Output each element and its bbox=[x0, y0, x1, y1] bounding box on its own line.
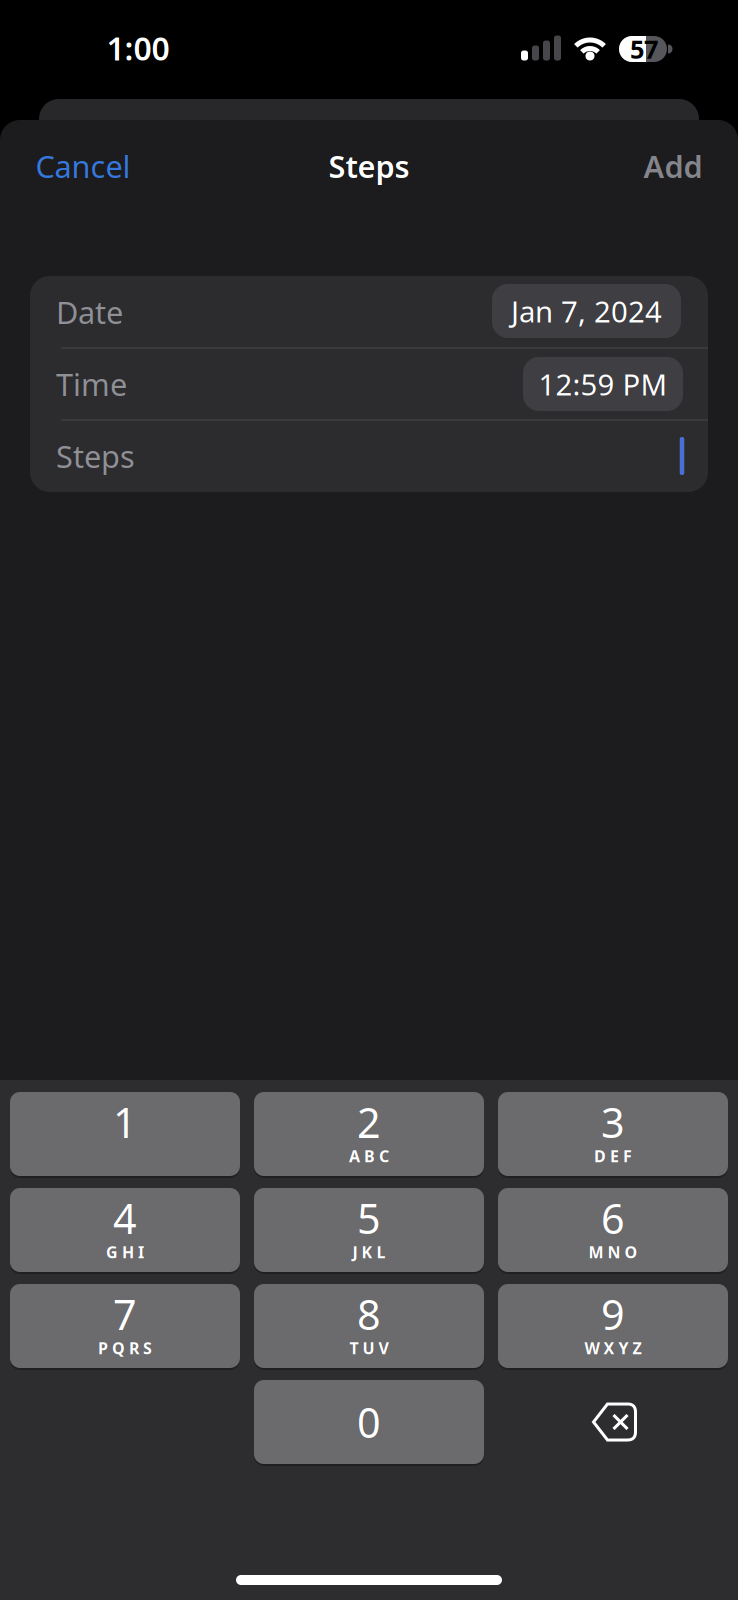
staticText: Steps bbox=[56, 436, 135, 476]
staticText: Steps bbox=[328, 146, 409, 186]
button[interactable]: 9 bbox=[498, 1284, 728, 1368]
button[interactable]: 8 bbox=[254, 1284, 484, 1368]
staticText: Date bbox=[56, 292, 123, 332]
button[interactable]: 0 bbox=[254, 1380, 484, 1464]
staticText: 2 bbox=[357, 1095, 381, 1149]
button[interactable]: 12:59 PM bbox=[523, 357, 683, 411]
staticText: Time bbox=[56, 364, 127, 404]
staticText: WXYZ bbox=[584, 1337, 641, 1359]
button[interactable]: 7 bbox=[10, 1284, 240, 1368]
staticText: 7 bbox=[113, 1287, 137, 1341]
staticText: DEF bbox=[594, 1145, 632, 1167]
staticText: ABC bbox=[349, 1145, 389, 1167]
staticText: 9 bbox=[601, 1287, 625, 1341]
staticText: Jan 7, 2024 bbox=[511, 291, 662, 330]
staticText: 57 bbox=[630, 32, 658, 66]
button[interactable]: Cancel bbox=[35, 146, 130, 186]
button[interactable]: Add bbox=[643, 146, 702, 186]
button[interactable]: 2 bbox=[254, 1092, 484, 1176]
button[interactable]: 5 bbox=[254, 1188, 484, 1272]
staticText: 8 bbox=[357, 1287, 381, 1341]
button[interactable]: Jan 7, 2024 bbox=[492, 284, 681, 338]
staticText: 12:59 PM bbox=[538, 364, 667, 403]
button[interactable]: Delete bbox=[592, 1401, 637, 1443]
button[interactable]: 6 bbox=[498, 1188, 728, 1272]
button[interactable]: 3 bbox=[498, 1092, 728, 1176]
staticText: Add bbox=[643, 146, 702, 186]
staticText: 4 bbox=[113, 1191, 137, 1245]
staticText: Cancel bbox=[35, 146, 130, 186]
staticText: TUV bbox=[349, 1337, 388, 1359]
staticText: PQRS bbox=[98, 1337, 152, 1359]
staticText: 5 bbox=[357, 1191, 381, 1245]
staticText: 0 bbox=[357, 1395, 381, 1449]
button[interactable]: 1 bbox=[10, 1092, 240, 1176]
staticText: 1:00 bbox=[106, 27, 169, 69]
button[interactable]: 4 bbox=[10, 1188, 240, 1272]
staticText: 1 bbox=[113, 1095, 137, 1149]
staticText: 6 bbox=[601, 1191, 625, 1245]
staticText: MNO bbox=[588, 1241, 637, 1263]
staticText: JKL bbox=[352, 1241, 385, 1263]
staticText: 3 bbox=[601, 1095, 625, 1149]
staticText: GHI bbox=[106, 1241, 144, 1263]
